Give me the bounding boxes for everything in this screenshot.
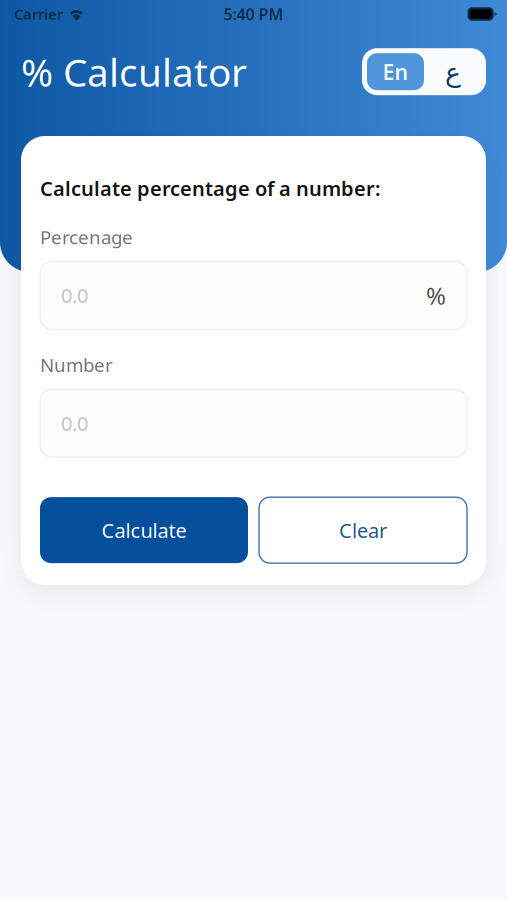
staticText: 0.0 bbox=[61, 410, 88, 436]
staticText: ع bbox=[444, 56, 460, 87]
staticText: Carrier bbox=[14, 4, 63, 24]
staticText: En bbox=[382, 57, 408, 86]
staticText: % bbox=[426, 279, 446, 311]
staticText: Percenage bbox=[40, 225, 133, 249]
button[interactable]: ع bbox=[424, 53, 481, 90]
staticText: 0.0 bbox=[61, 282, 88, 309]
button[interactable]: En bbox=[367, 53, 424, 90]
staticText: % Calculator bbox=[21, 46, 247, 97]
staticText: Calculate bbox=[101, 517, 186, 543]
staticText: 5:40 PM bbox=[223, 3, 283, 25]
staticText: Calculate percentage of a number: bbox=[40, 175, 381, 202]
staticText: Number bbox=[40, 352, 113, 377]
staticText: Clear bbox=[339, 517, 387, 543]
button[interactable]: Clear bbox=[259, 497, 467, 563]
button[interactable]: Calculate bbox=[40, 497, 248, 563]
